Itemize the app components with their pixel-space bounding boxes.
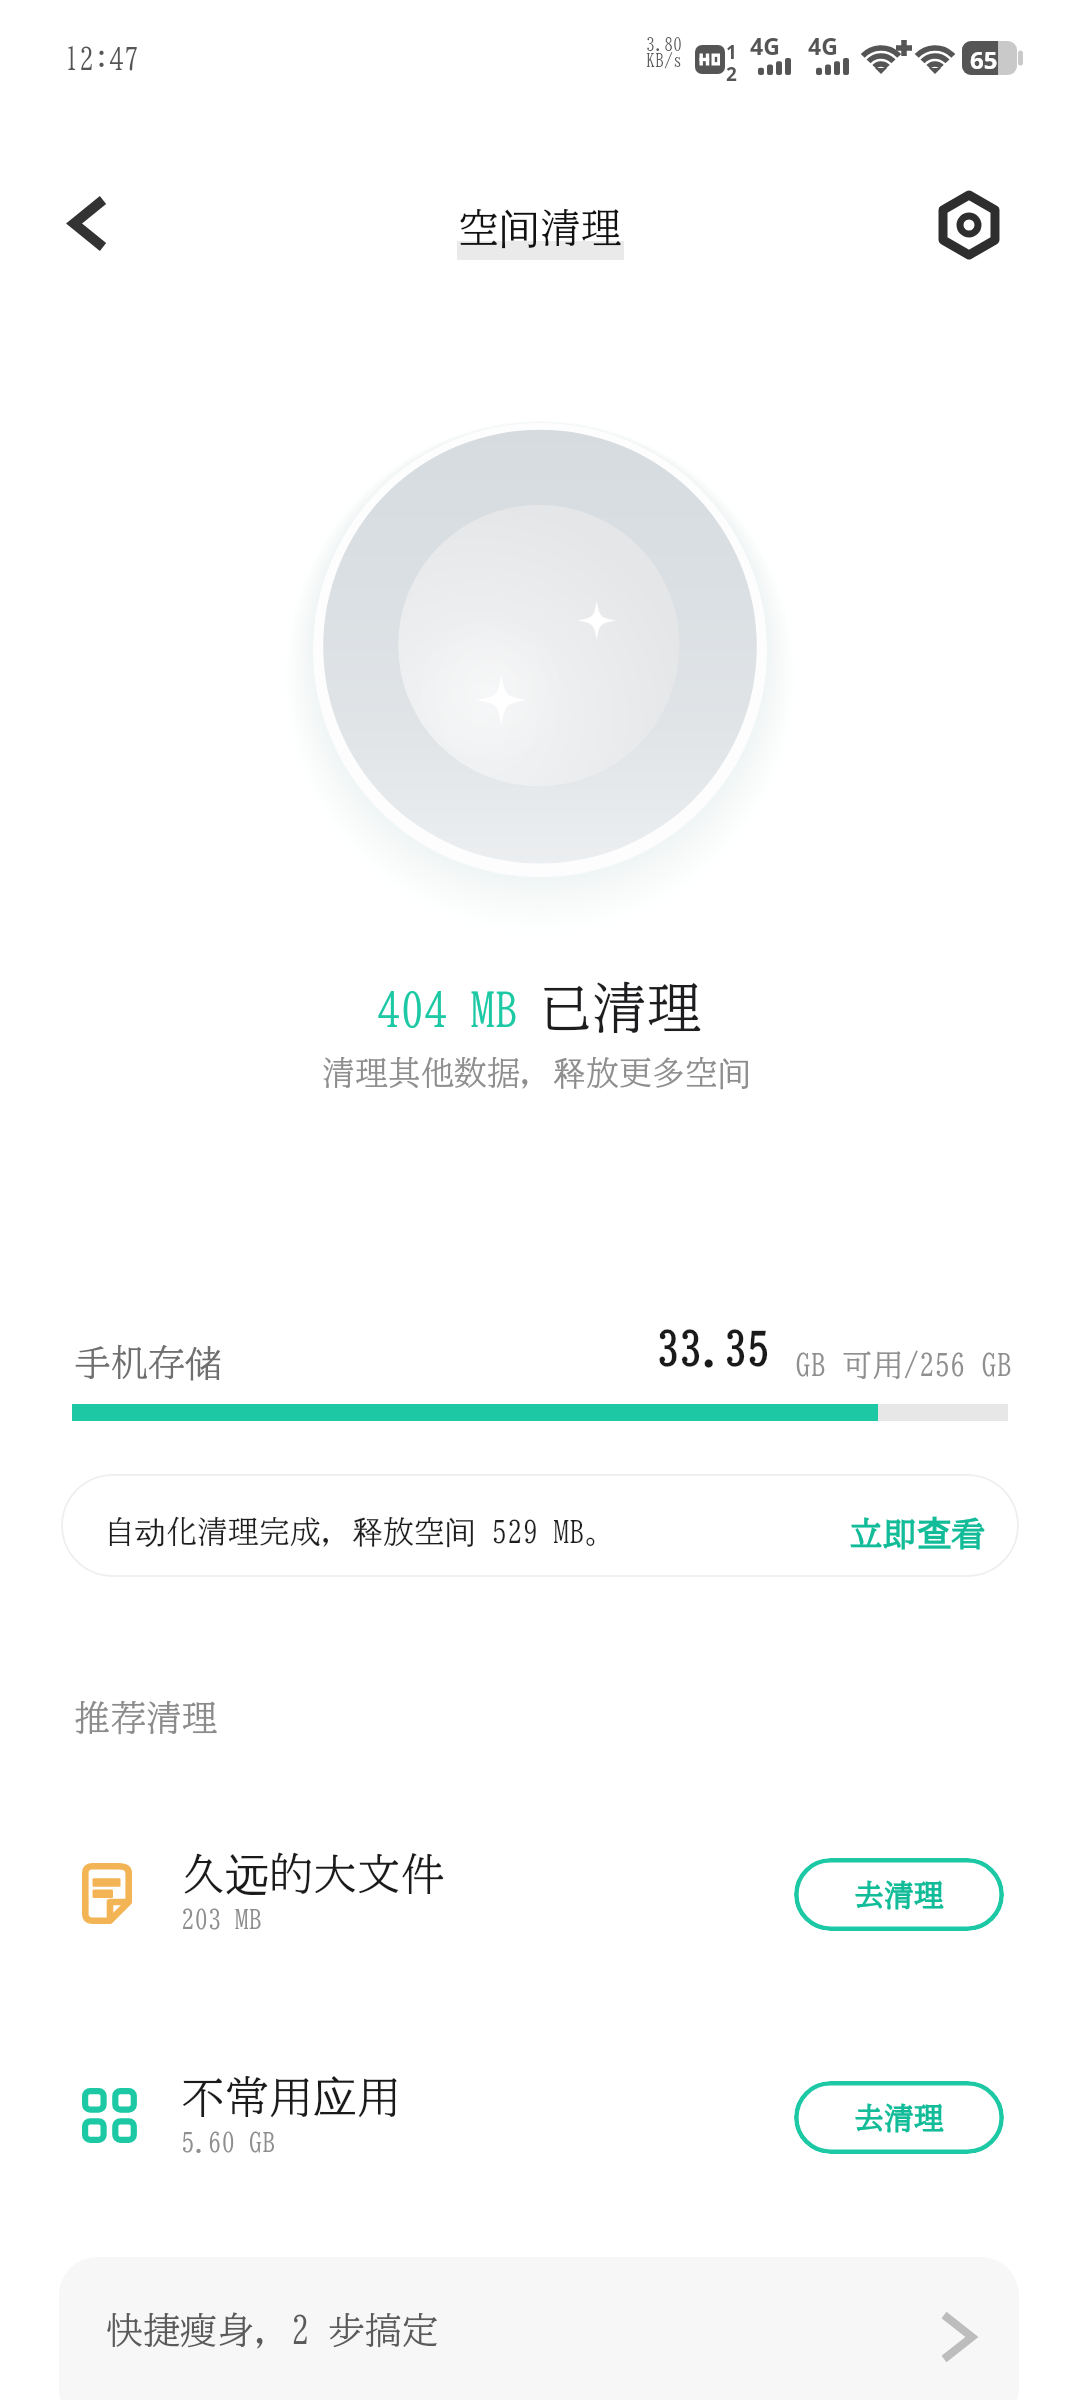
- staticText: 203 MB: [181, 1905, 262, 1932]
- staticText: KB/s: [646, 51, 682, 69]
- staticText: 推荐清理: [74, 1699, 218, 1735]
- staticText: 4G: [750, 30, 780, 61]
- staticText: 清理其他数据，释放更多空间: [322, 1053, 751, 1095]
- staticText: 404 MB: [377, 986, 518, 1033]
- staticText: 去清理: [854, 2103, 944, 2133]
- staticText: 3.80: [646, 35, 682, 53]
- staticText: 2: [726, 61, 737, 87]
- button[interactable]: Back: [46, 181, 130, 265]
- staticText: 4G: [808, 30, 838, 61]
- staticText: 快捷瘦身，2 步搞定: [106, 2311, 439, 2348]
- button[interactable]: 去清理: [794, 1858, 1004, 1931]
- button[interactable]: 自动化清理完成，释放空间 529 MB。: [61, 1474, 1019, 1577]
- staticText: 空间清理: [458, 204, 622, 256]
- staticText: 自动化清理完成，释放空间 529 MB。: [104, 1513, 616, 1552]
- staticText: 65: [970, 43, 998, 76]
- staticText: 立即查看: [849, 1513, 985, 1556]
- button[interactable]: 去清理: [794, 2081, 1004, 2154]
- button[interactable]: 快捷瘦身，2 步搞定: [59, 2257, 1019, 2400]
- staticText: 手机存储: [74, 1340, 222, 1387]
- button[interactable]: Settings: [925, 181, 1013, 269]
- staticText: 5.60 GB: [181, 2128, 276, 2155]
- staticText: 33.35: [657, 1325, 770, 1370]
- staticText: 不常用应用: [181, 2071, 401, 2126]
- staticText: 1: [726, 39, 737, 65]
- staticText: 已清理: [537, 980, 702, 1035]
- staticText: 去清理: [854, 1880, 944, 1910]
- staticText: 12:47: [64, 44, 139, 74]
- staticText: GB 可用/256 GB: [795, 1349, 1012, 1380]
- staticText: 久远的大文件: [181, 1848, 445, 1903]
